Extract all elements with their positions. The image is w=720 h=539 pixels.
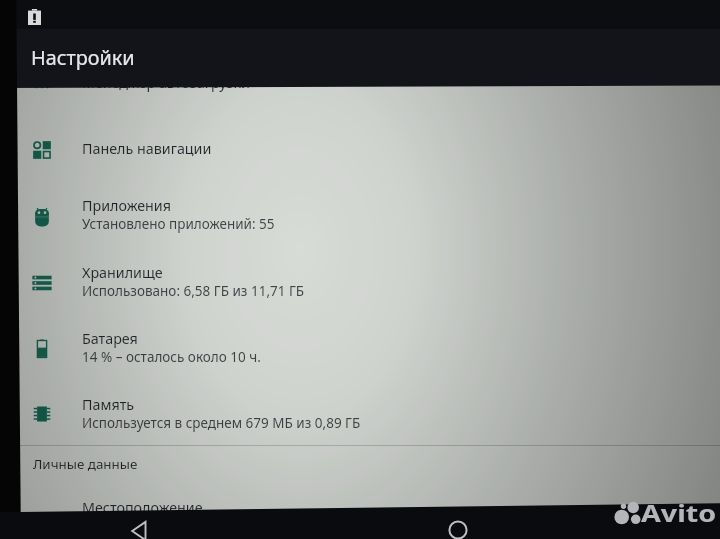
button[interactable]: Батарея (0, 321, 720, 379)
button[interactable]: Память (0, 387, 720, 445)
staticText: Хранилище (82, 263, 163, 282)
staticText: Местоположение (82, 498, 203, 517)
staticText: Панель навигации (82, 139, 212, 158)
button[interactable]: Home (436, 505, 480, 539)
staticText: Avito (641, 497, 716, 529)
button[interactable]: Менеджер автозагрузки (0, 67, 720, 107)
staticText: Менеджер автозагрузки (82, 73, 250, 92)
staticText: Личные данные (33, 455, 138, 473)
staticText: Память (82, 395, 135, 414)
staticText: Установлено приложений: 55 (82, 215, 275, 233)
button[interactable]: Панель навигации (0, 131, 720, 175)
staticText: Батарея (82, 329, 138, 348)
button[interactable]: Back (118, 505, 162, 539)
button[interactable]: Настройки (0, 29, 720, 87)
staticText: Использовано: 6,58 ГБ из 11,71 ГБ (82, 282, 305, 300)
button[interactable]: Приложения (0, 188, 720, 246)
staticText: Приложения (82, 196, 171, 215)
button[interactable]: Личные данные (0, 446, 720, 486)
staticText: Настройки (31, 44, 135, 71)
staticText: 14 % – осталось около 10 ч. (82, 348, 261, 366)
staticText: Используется в среднем 679 МБ из 0,89 ГБ (82, 414, 361, 432)
button[interactable]: Хранилище (0, 255, 720, 313)
